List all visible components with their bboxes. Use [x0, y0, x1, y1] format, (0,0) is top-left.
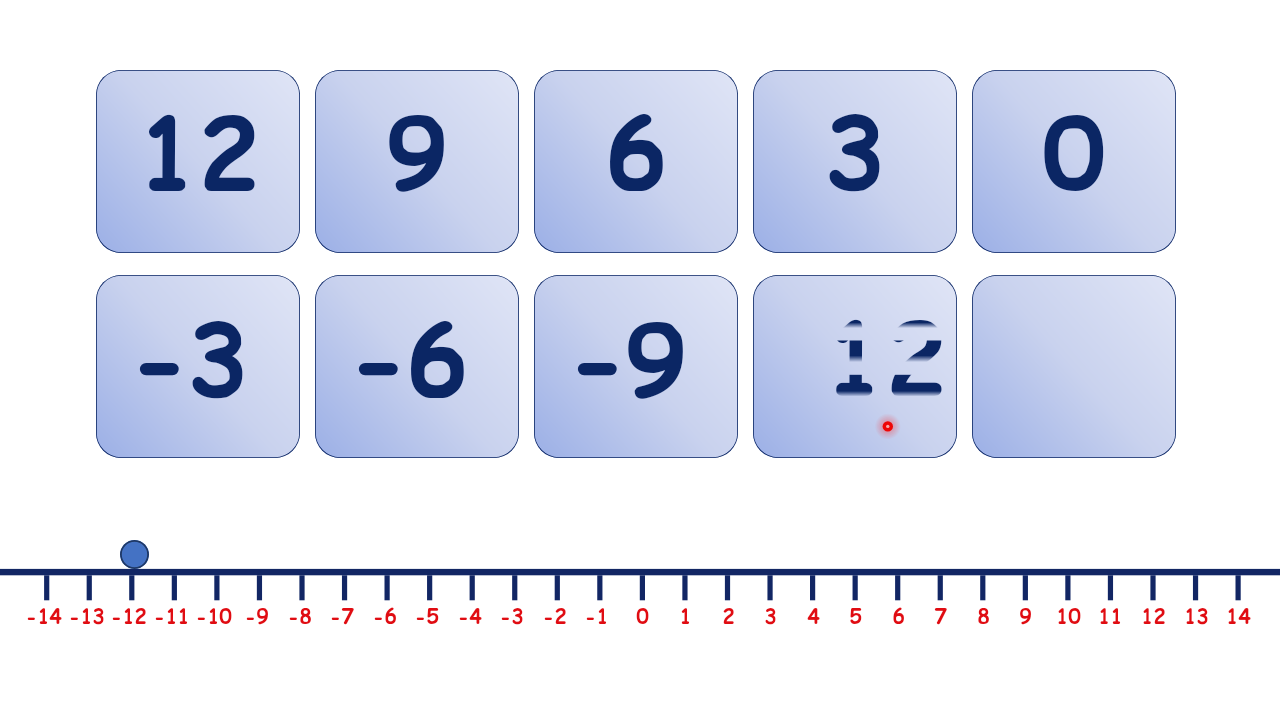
button[interactable]: 12 [96, 70, 300, 253]
staticText: -6 [372, 603, 397, 631]
staticText: -1 [584, 603, 609, 631]
button[interactable]: 6 [534, 70, 738, 253]
staticText: 4 [807, 603, 820, 631]
staticText: 0 [1043, 84, 1105, 224]
staticText: -2 [542, 603, 567, 631]
staticText: -11 [153, 603, 190, 631]
staticText: 3 [187, 291, 249, 431]
button[interactable]: Position marker at minus 12 [120, 540, 149, 569]
button[interactable]: minus 6 [315, 275, 519, 458]
staticText: 11 [1098, 603, 1123, 631]
staticText: -14 [25, 603, 62, 631]
staticText: -8 [287, 603, 312, 631]
button[interactable]: minus 9 [534, 275, 738, 458]
staticText: 7 [934, 603, 947, 631]
staticText: 14 [1226, 603, 1251, 631]
staticText: 5 [849, 603, 862, 631]
staticText: 9 [1019, 603, 1032, 631]
button[interactable]: minus 12, revealing [753, 275, 957, 458]
staticText: 12 [137, 84, 260, 224]
staticText: 12 [824, 289, 947, 429]
staticText: 3 [824, 84, 886, 224]
button[interactable]: minus 3 [96, 275, 300, 458]
staticText: -7 [329, 603, 354, 631]
button[interactable]: Empty card [972, 275, 1176, 458]
staticText: 0 [636, 603, 649, 631]
button[interactable]: 9 [315, 70, 519, 253]
staticText: -13 [68, 603, 105, 631]
staticText: 1 [679, 603, 692, 631]
staticText: 6 [406, 291, 468, 431]
staticText: -3 [499, 603, 524, 631]
staticText: -12 [110, 603, 147, 631]
button[interactable]: 0 [972, 70, 1176, 253]
staticText: 9 [386, 84, 448, 224]
staticText: 12 [1141, 603, 1166, 631]
staticText: 9 [625, 291, 687, 431]
staticText: 2 [722, 603, 735, 631]
staticText: -4 [457, 603, 482, 631]
staticText: 3 [764, 603, 777, 631]
staticText: 8 [977, 603, 990, 631]
staticText: -5 [414, 603, 439, 631]
staticText: 13 [1184, 603, 1209, 631]
staticText: 6 [605, 84, 667, 224]
staticText: 6 [892, 603, 905, 631]
staticText: -9 [244, 603, 269, 631]
staticText: -10 [195, 603, 232, 631]
staticText: 10 [1056, 603, 1081, 631]
button[interactable]: 3 [753, 70, 957, 253]
